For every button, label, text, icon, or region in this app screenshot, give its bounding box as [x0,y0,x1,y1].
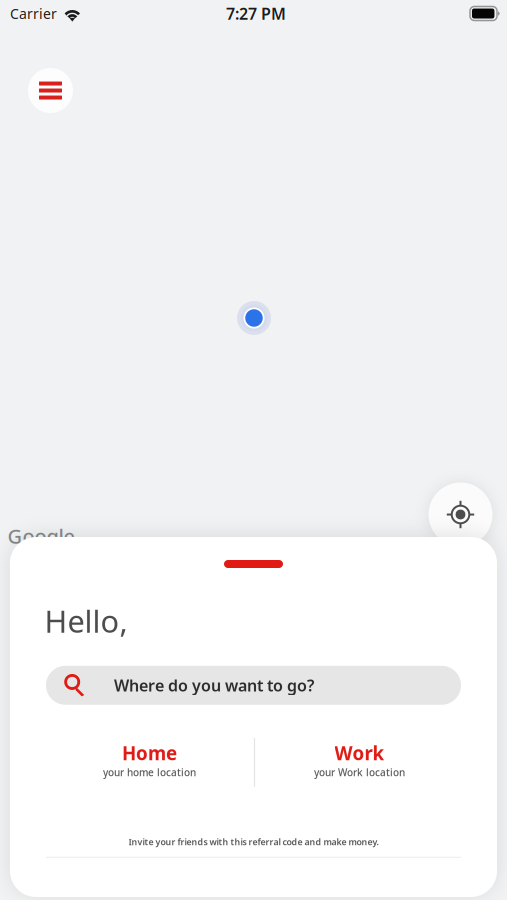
staticText: Google [7,522,74,550]
staticText: Where do you want to go? [114,674,314,696]
staticText: Carrier [10,4,57,23]
staticText: Invite your friends with this referral c… [128,836,378,848]
button[interactable]: Where do you want to go? [46,666,461,705]
button[interactable]: Work [255,734,464,786]
staticText: Hello, [44,600,127,642]
staticText: your home location [103,766,196,779]
button[interactable]: Home [45,734,254,786]
staticText: Home [122,740,177,766]
staticText: your Work location [314,766,405,779]
staticText: Work [335,740,385,766]
button[interactable]: My location [428,482,492,546]
button[interactable]: Menu [28,68,73,113]
staticText: 7:27 PM [226,3,286,24]
